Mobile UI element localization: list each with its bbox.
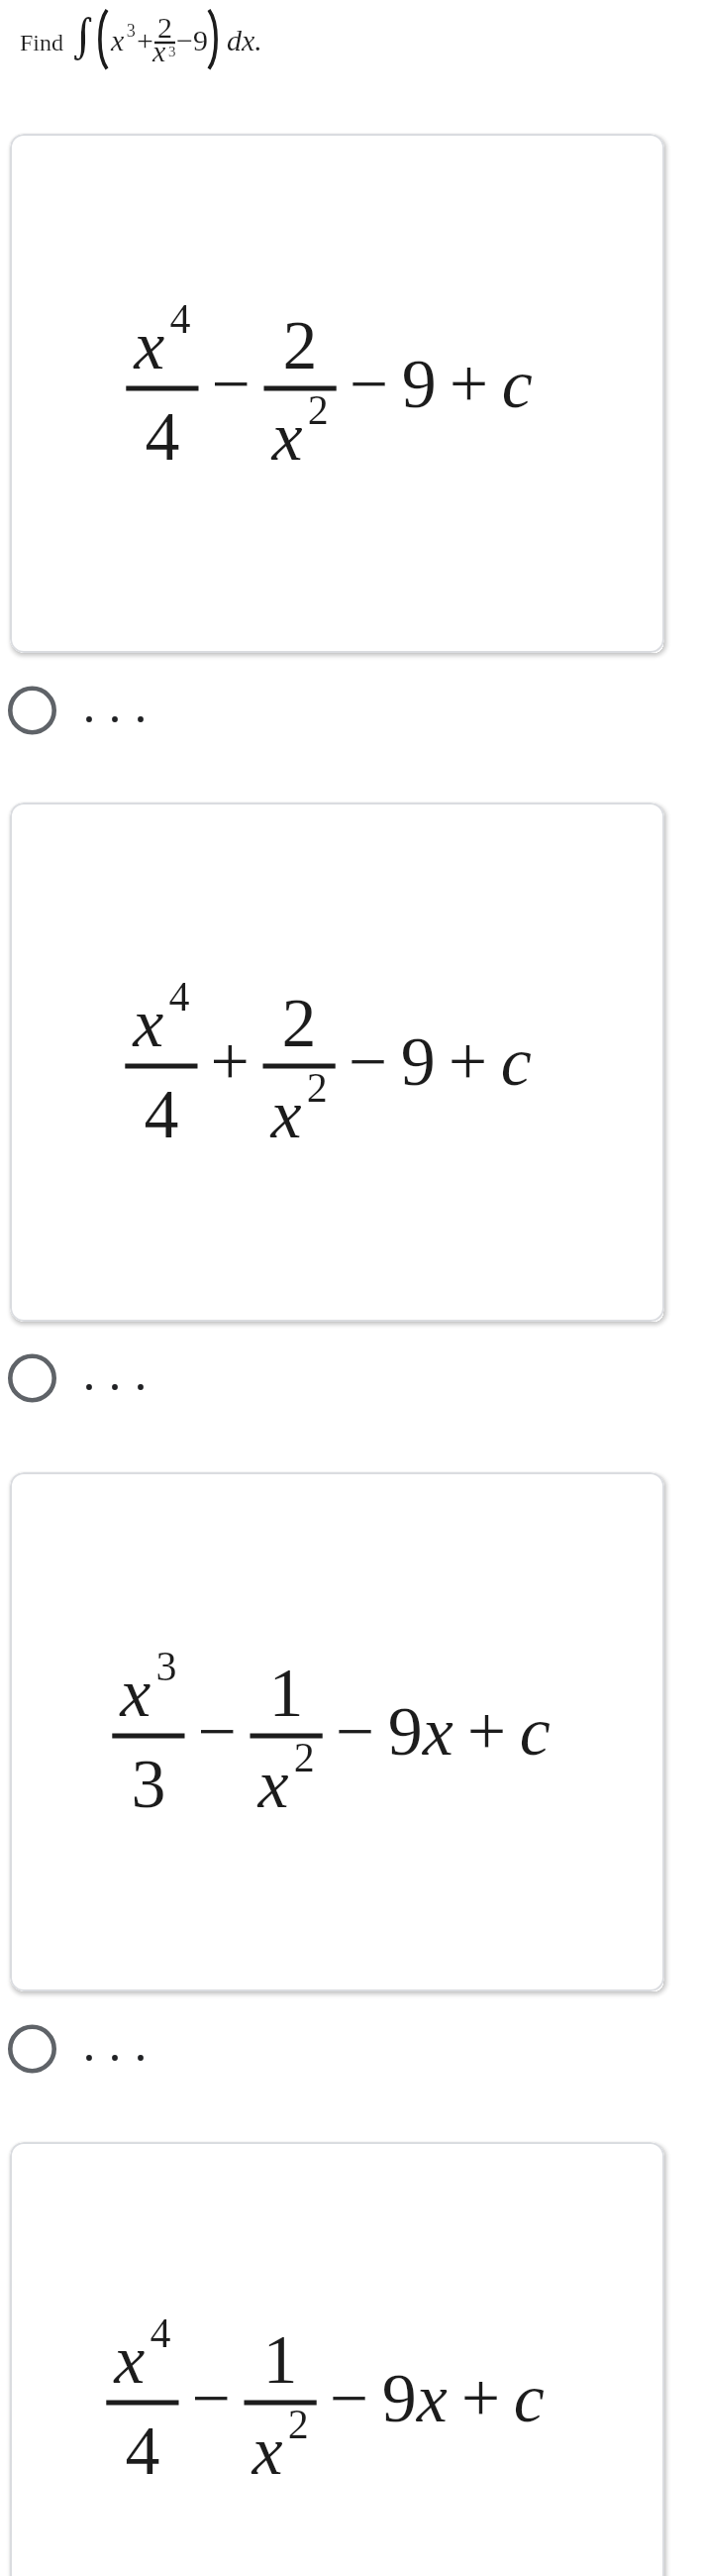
button[interactable] <box>6 1350 154 1406</box>
button[interactable] <box>6 2021 154 2077</box>
button[interactable] <box>6 683 154 738</box>
button[interactable] <box>10 803 664 1322</box>
button[interactable] <box>10 2142 664 2576</box>
button[interactable] <box>10 134 664 653</box>
button[interactable] <box>10 1472 664 1991</box>
